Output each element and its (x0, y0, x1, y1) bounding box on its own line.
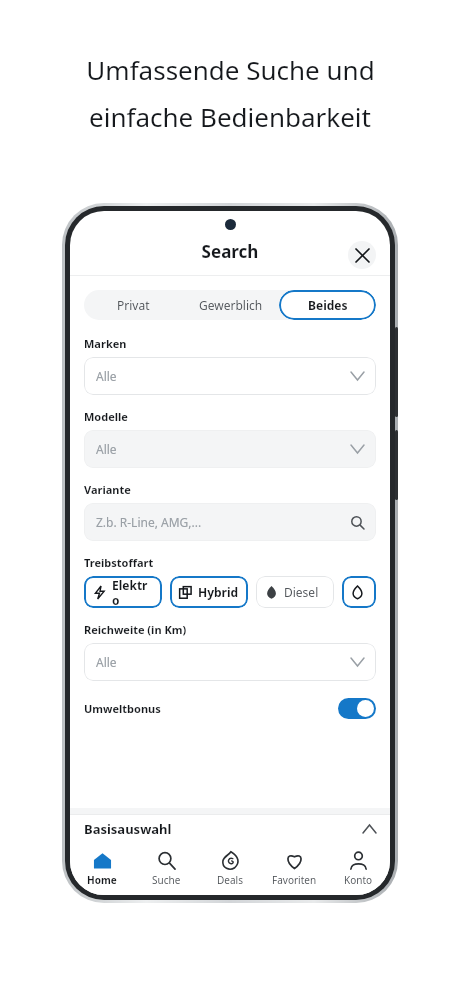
staticText: Deals (217, 873, 243, 887)
staticText: Treibstoffart (84, 555, 154, 570)
button[interactable]: Benz (342, 576, 376, 608)
staticText: Alle (96, 654, 117, 670)
button[interactable]: Umweltbonus (84, 691, 376, 725)
button[interactable]: Diesel (256, 576, 334, 608)
button[interactable]: Suche (134, 847, 198, 891)
staticText: Konto (344, 873, 373, 887)
staticText: Basisauswahl (84, 820, 172, 838)
button[interactable]: Elektro (84, 576, 162, 608)
button[interactable]: Home (70, 847, 134, 891)
staticText: Umweltbonus (84, 701, 161, 716)
staticText: Privat (117, 297, 150, 313)
staticText: Hybrid (198, 584, 239, 600)
staticText: Z.b. R-Line, AMG,... (96, 514, 202, 530)
staticText: Marken (84, 336, 127, 351)
button[interactable]: Close (348, 241, 376, 269)
button[interactable]: Deals (198, 847, 262, 891)
staticText: Reichweite (in Km) (84, 622, 187, 637)
staticText: Alle (96, 368, 117, 384)
staticText: Home (87, 873, 117, 887)
button[interactable]: Privat (84, 290, 182, 320)
button[interactable]: Konto (326, 847, 390, 891)
staticText: Gewerblich (199, 297, 263, 313)
button[interactable]: Z.b. R-Line, AMG,... (84, 503, 376, 541)
button[interactable]: Gewerblich (182, 290, 279, 320)
staticText: Modelle (84, 409, 128, 424)
button[interactable]: Alle (84, 357, 376, 395)
button[interactable]: Alle (84, 430, 376, 468)
staticText: Suche (152, 873, 181, 887)
staticText: Beides (308, 297, 348, 313)
staticText: Variante (84, 482, 131, 497)
button[interactable]: Beides (279, 290, 376, 320)
button[interactable]: Basisauswahl (70, 815, 390, 843)
staticText: einfache Bedienbarkeit (89, 99, 371, 134)
staticText: Search (70, 240, 390, 263)
button[interactable]: Hybrid (170, 576, 248, 608)
staticText: Elektro (112, 577, 153, 608)
staticText: Diesel (284, 584, 319, 600)
button[interactable]: Alle (84, 643, 376, 681)
staticText: Umfassende Suche und (86, 52, 375, 87)
staticText: Favoriten (272, 873, 317, 887)
staticText: Alle (96, 441, 117, 457)
button[interactable]: Favoriten (262, 847, 326, 891)
